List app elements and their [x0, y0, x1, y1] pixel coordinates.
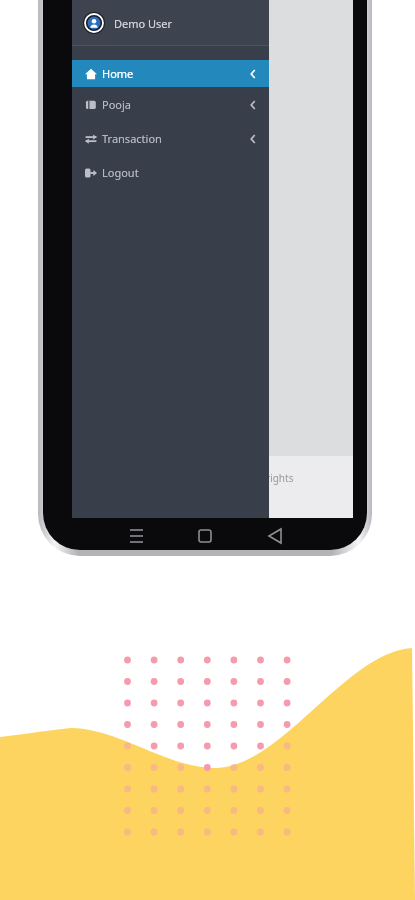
staticText: Pooja	[102, 97, 131, 112]
staticText: rights	[266, 471, 294, 485]
button[interactable]: Logout	[72, 155, 269, 189]
staticText: Transaction	[102, 131, 162, 146]
button[interactable]: Home	[72, 60, 269, 87]
staticText: Home	[102, 66, 134, 81]
button[interactable]: User profile	[72, 0, 269, 45]
staticText: Demo User	[114, 16, 173, 31]
staticText: Logout	[102, 165, 139, 180]
other: User profile	[83, 12, 105, 34]
button[interactable]: Transaction	[72, 121, 269, 155]
button[interactable]: Pooja	[72, 87, 269, 121]
